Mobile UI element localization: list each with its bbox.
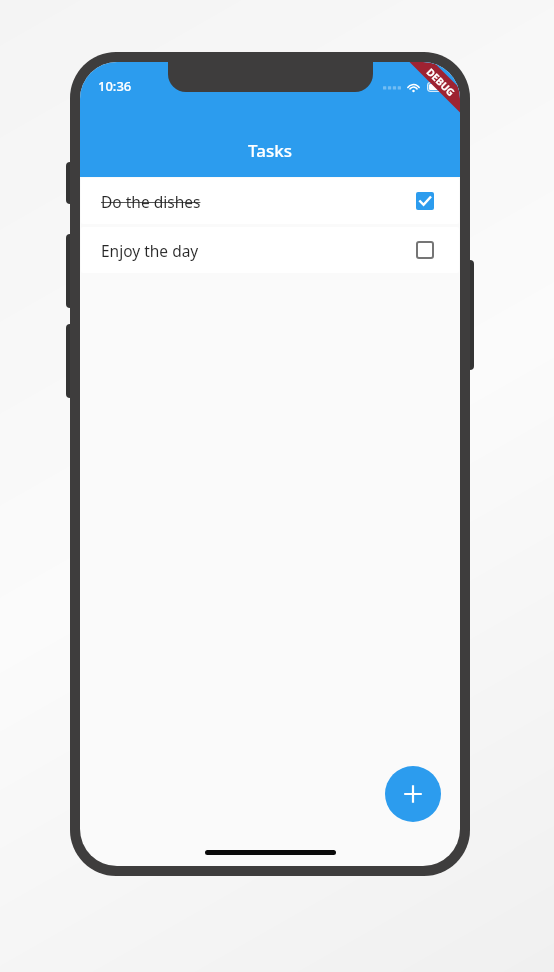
button[interactable]: Add task (385, 766, 441, 822)
staticText: DEBUG (424, 65, 458, 99)
button[interactable]: Mark incomplete (410, 186, 440, 216)
staticText: 10:36 (98, 77, 132, 95)
button[interactable]: Do the dishes (81, 178, 459, 224)
staticText: Do the dishes (101, 191, 410, 212)
button[interactable]: Mark complete (410, 235, 440, 265)
button[interactable]: Enjoy the day (81, 227, 459, 273)
staticText: Enjoy the day (101, 240, 410, 261)
staticText: Tasks (248, 139, 292, 162)
